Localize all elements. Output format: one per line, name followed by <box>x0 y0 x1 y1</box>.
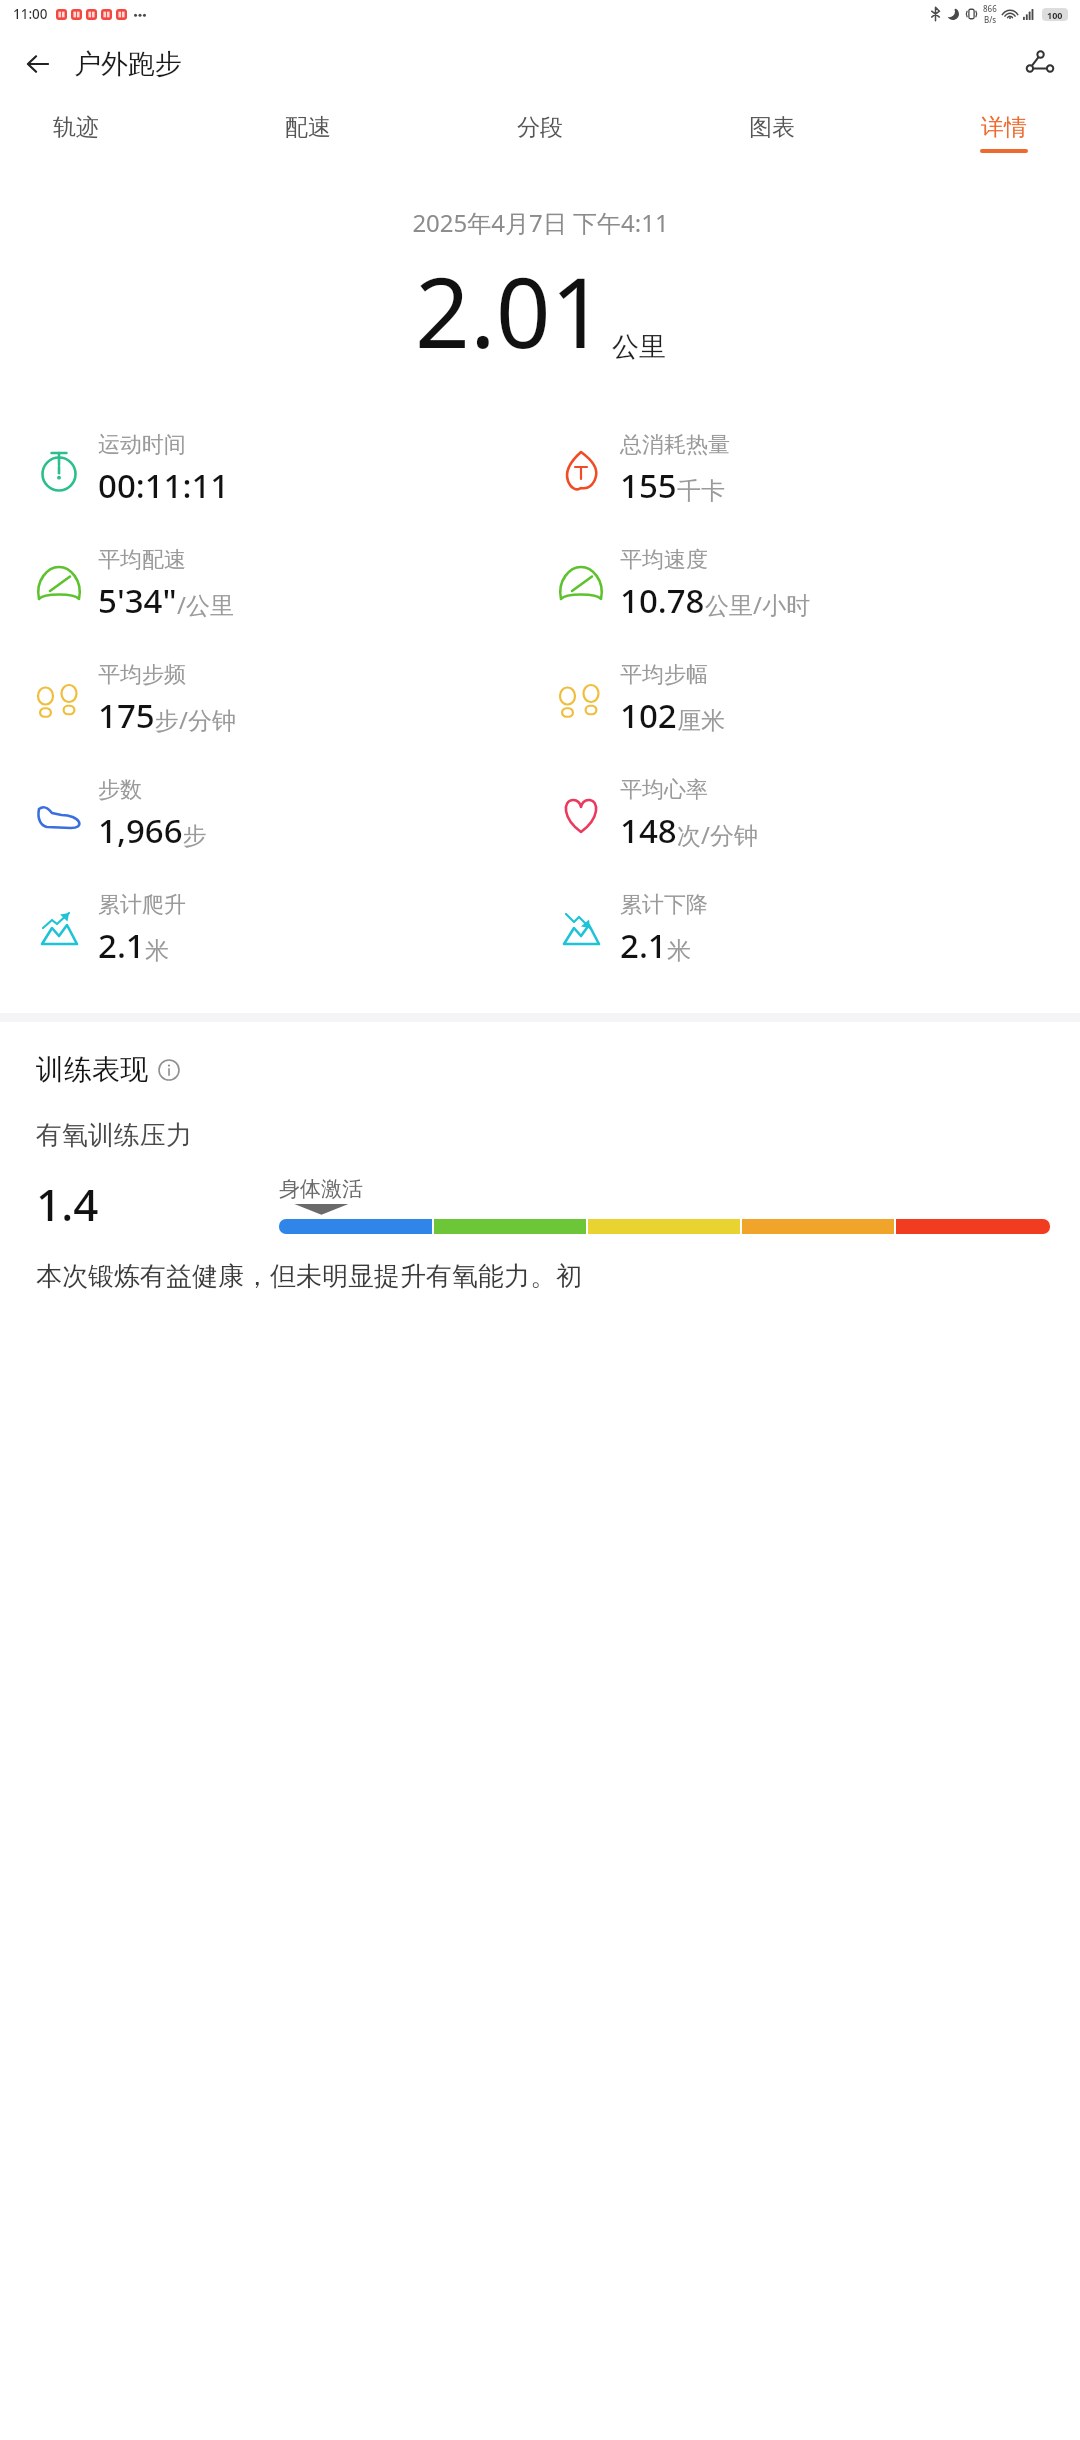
staticText: B/s <box>984 14 997 25</box>
staticText: 详情 <box>981 113 1027 142</box>
staticText: 图表 <box>749 113 795 142</box>
staticText: 00:11:11 <box>98 463 230 508</box>
staticText: 本次锻炼有益健康，但未明显提升有氧能力。初 <box>36 1260 582 1293</box>
staticText: 5'34" <box>98 578 177 623</box>
staticText: 155 <box>620 463 677 508</box>
button[interactable]: 运动时间 <box>34 412 540 527</box>
staticText: 配速 <box>285 113 331 142</box>
staticText: 平均步幅 <box>620 661 708 689</box>
staticText: 10.78 <box>620 578 705 623</box>
staticText: 累计爬升 <box>98 891 186 919</box>
staticText: 步数 <box>98 776 142 804</box>
staticText: 训练表现 <box>36 1052 148 1087</box>
staticText: 身体激活 <box>279 1176 363 1202</box>
staticText: 平均心率 <box>620 776 708 804</box>
staticText: 步/分钟 <box>155 703 236 736</box>
button[interactable]: Share <box>1016 40 1064 88</box>
staticText: 866 <box>983 3 997 14</box>
staticText: 11:00 <box>13 5 48 23</box>
staticText: 运动时间 <box>98 431 186 459</box>
button[interactable]: 平均步幅 <box>556 642 1080 757</box>
staticText: 轨迹 <box>53 113 99 142</box>
staticText: 次/分钟 <box>677 818 758 851</box>
button[interactable]: 步数 <box>34 757 540 872</box>
staticText: 2.1 <box>98 923 145 968</box>
staticText: 平均配速 <box>98 546 186 574</box>
staticText: 有氧训练压力 <box>36 1119 192 1152</box>
staticText: 米 <box>667 936 691 966</box>
staticText: 148 <box>620 808 677 853</box>
staticText: 2025年4月7日 下午4:11 <box>412 206 669 239</box>
button[interactable]: 详情 <box>974 109 1034 157</box>
staticText: 户外跑步 <box>74 47 182 81</box>
staticText: 平均步频 <box>98 661 186 689</box>
button[interactable]: 轨迹 <box>46 109 106 157</box>
staticText: 分段 <box>517 113 563 142</box>
staticText: 102 <box>620 693 677 738</box>
staticText: 步 <box>183 821 207 851</box>
staticText: 100 <box>1047 9 1063 21</box>
button[interactable]: 累计爬升 <box>34 872 540 987</box>
button[interactable]: Back <box>14 40 62 88</box>
staticText: 2.01 <box>415 245 606 376</box>
staticText: 公里/小时 <box>705 588 810 621</box>
staticText: 1.4 <box>36 1174 99 1234</box>
button[interactable]: 总消耗热量 <box>556 412 1080 527</box>
staticText: /公里 <box>177 588 234 621</box>
staticText: 厘米 <box>677 706 725 736</box>
staticText: 175 <box>98 693 155 738</box>
button[interactable]: 平均心率 <box>556 757 1080 872</box>
staticText: 公里 <box>612 330 666 364</box>
staticText: 2.1 <box>620 923 667 968</box>
staticText: 总消耗热量 <box>620 431 730 459</box>
button[interactable]: 平均速度 <box>556 527 1080 642</box>
staticText: 米 <box>145 936 169 966</box>
button[interactable]: 分段 <box>510 109 570 157</box>
button[interactable]: 图表 <box>742 109 802 157</box>
other: Info <box>158 1059 180 1081</box>
button[interactable]: 平均配速 <box>34 527 540 642</box>
button[interactable]: 训练表现 <box>36 1052 180 1087</box>
button[interactable]: 配速 <box>278 109 338 157</box>
staticText: 千卡 <box>677 476 725 506</box>
staticText: 累计下降 <box>620 891 708 919</box>
staticText: 平均速度 <box>620 546 708 574</box>
button[interactable]: 累计下降 <box>556 872 1080 987</box>
staticText: 1,966 <box>98 808 183 853</box>
button[interactable]: 平均步频 <box>34 642 540 757</box>
